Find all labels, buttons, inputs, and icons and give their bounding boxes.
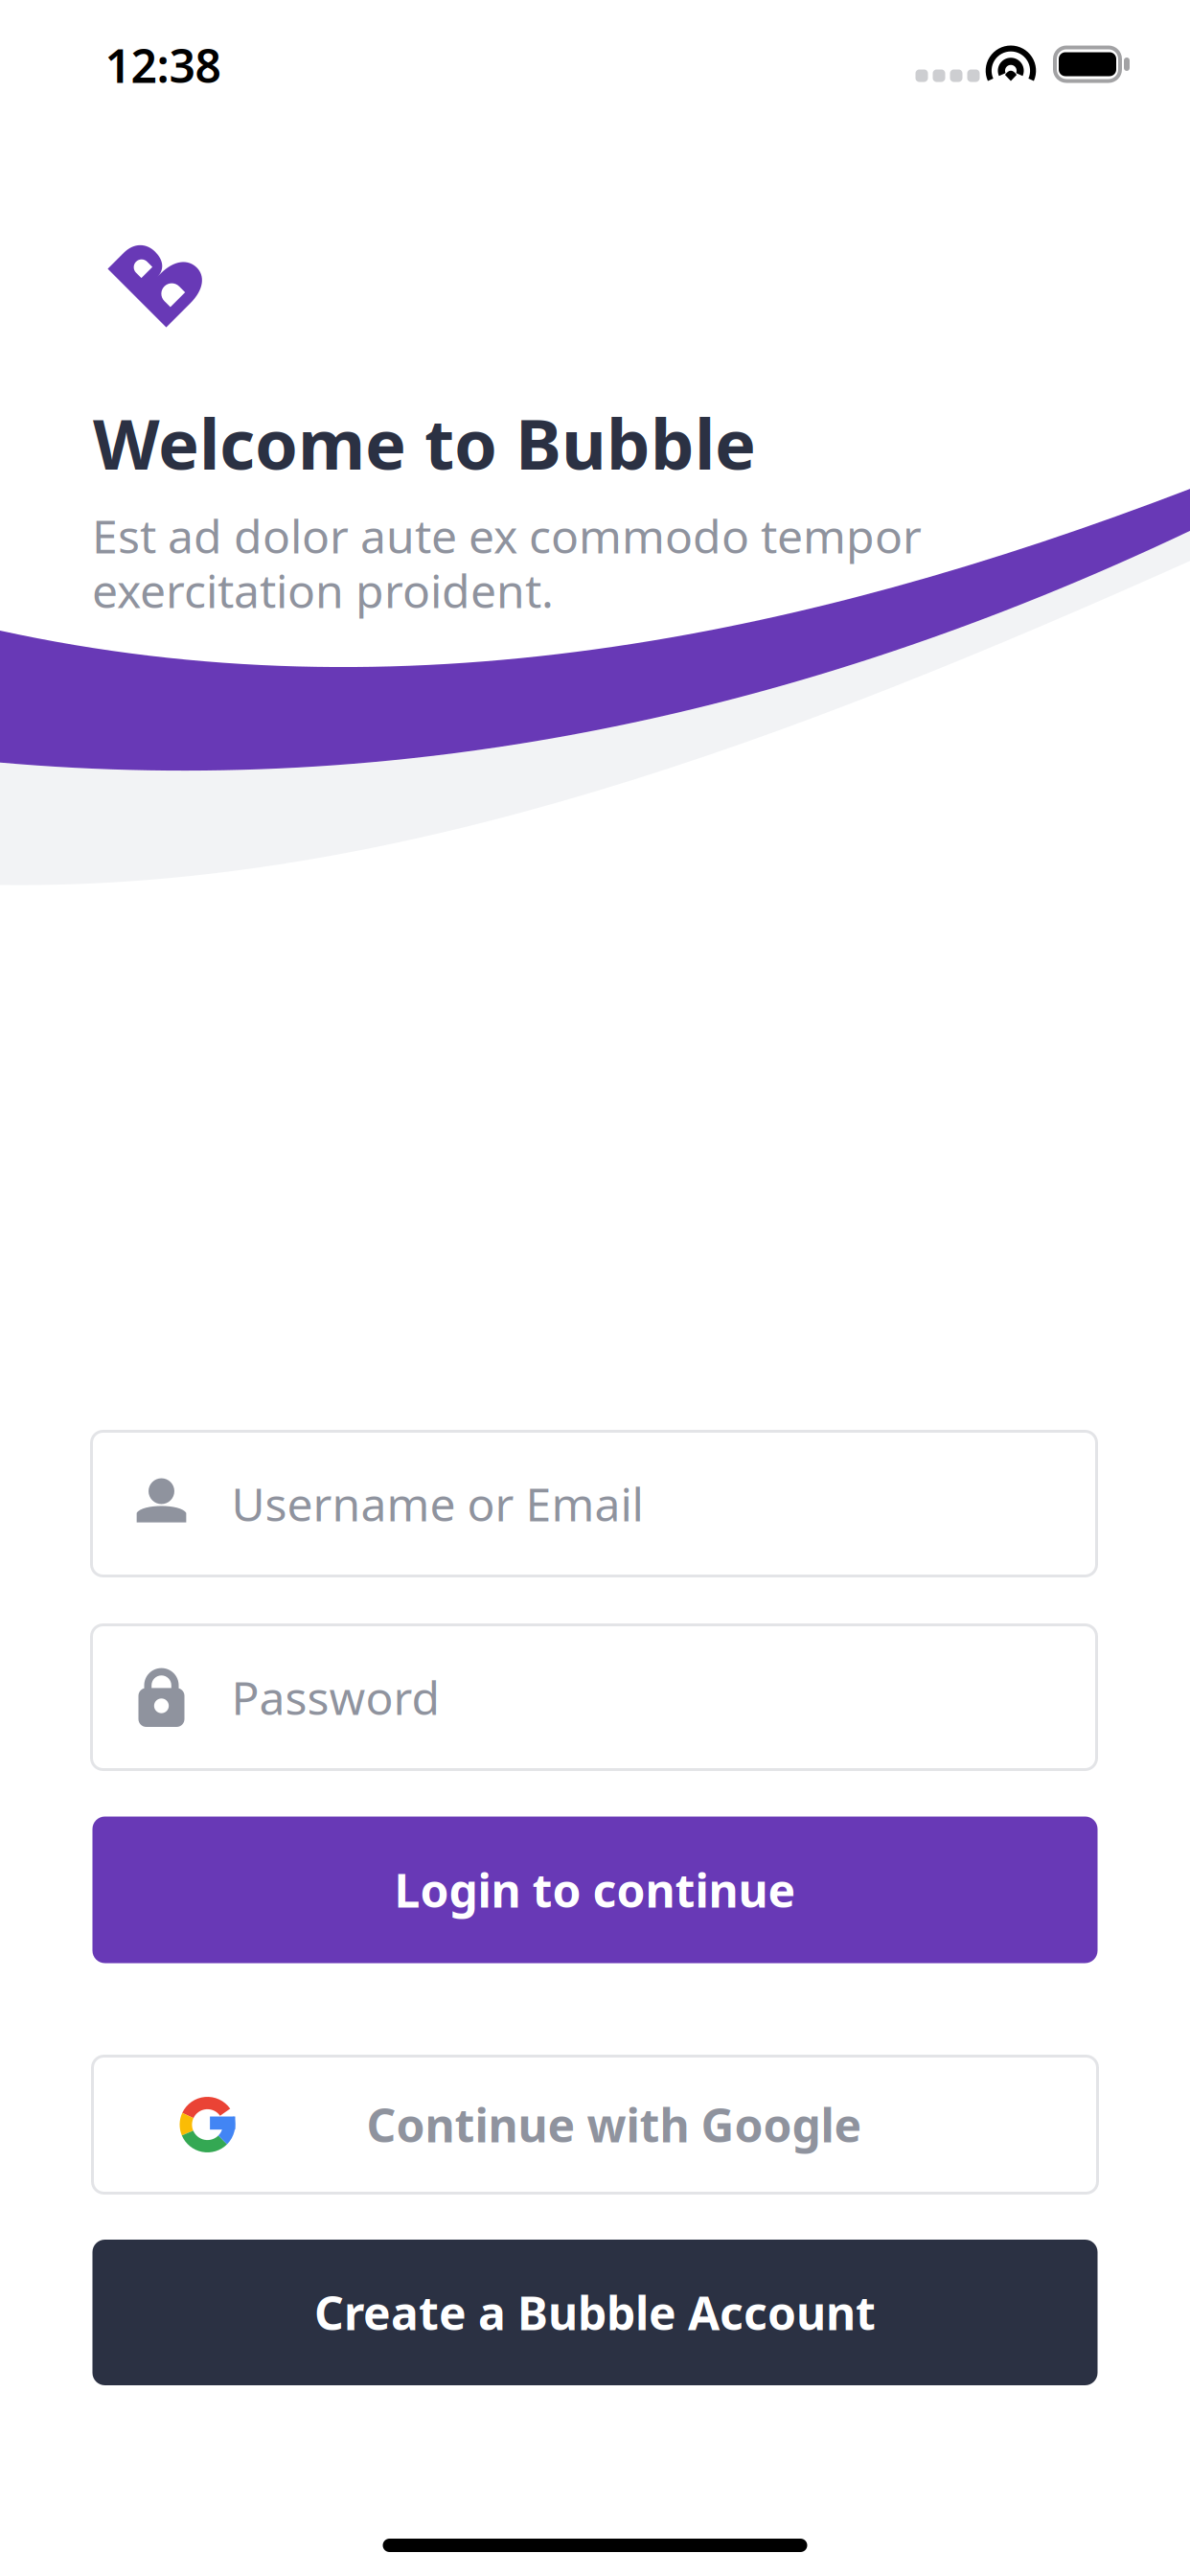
staticText: Password bbox=[231, 1667, 440, 1728]
staticText: Est ad dolor aute ex commodo tempor bbox=[92, 505, 922, 566]
staticText: exercitation proident. bbox=[92, 560, 554, 621]
staticText: Username or Email bbox=[231, 1473, 643, 1534]
button[interactable]: Password bbox=[92, 1625, 1097, 1770]
staticText: Create a Bubble Account bbox=[314, 2282, 876, 2343]
staticText: Welcome to Bubble bbox=[93, 397, 756, 489]
button[interactable]: Username or Email bbox=[92, 1431, 1097, 1576]
button[interactable]: Login to continue bbox=[92, 1817, 1098, 1963]
button[interactable]: Continue with Google bbox=[92, 2056, 1098, 2193]
staticText: Login to continue bbox=[394, 1859, 796, 1920]
staticText: Continue with Google bbox=[366, 2094, 862, 2155]
staticText: 12:38 bbox=[105, 35, 221, 96]
button[interactable]: Create a Bubble Account bbox=[92, 2240, 1098, 2385]
